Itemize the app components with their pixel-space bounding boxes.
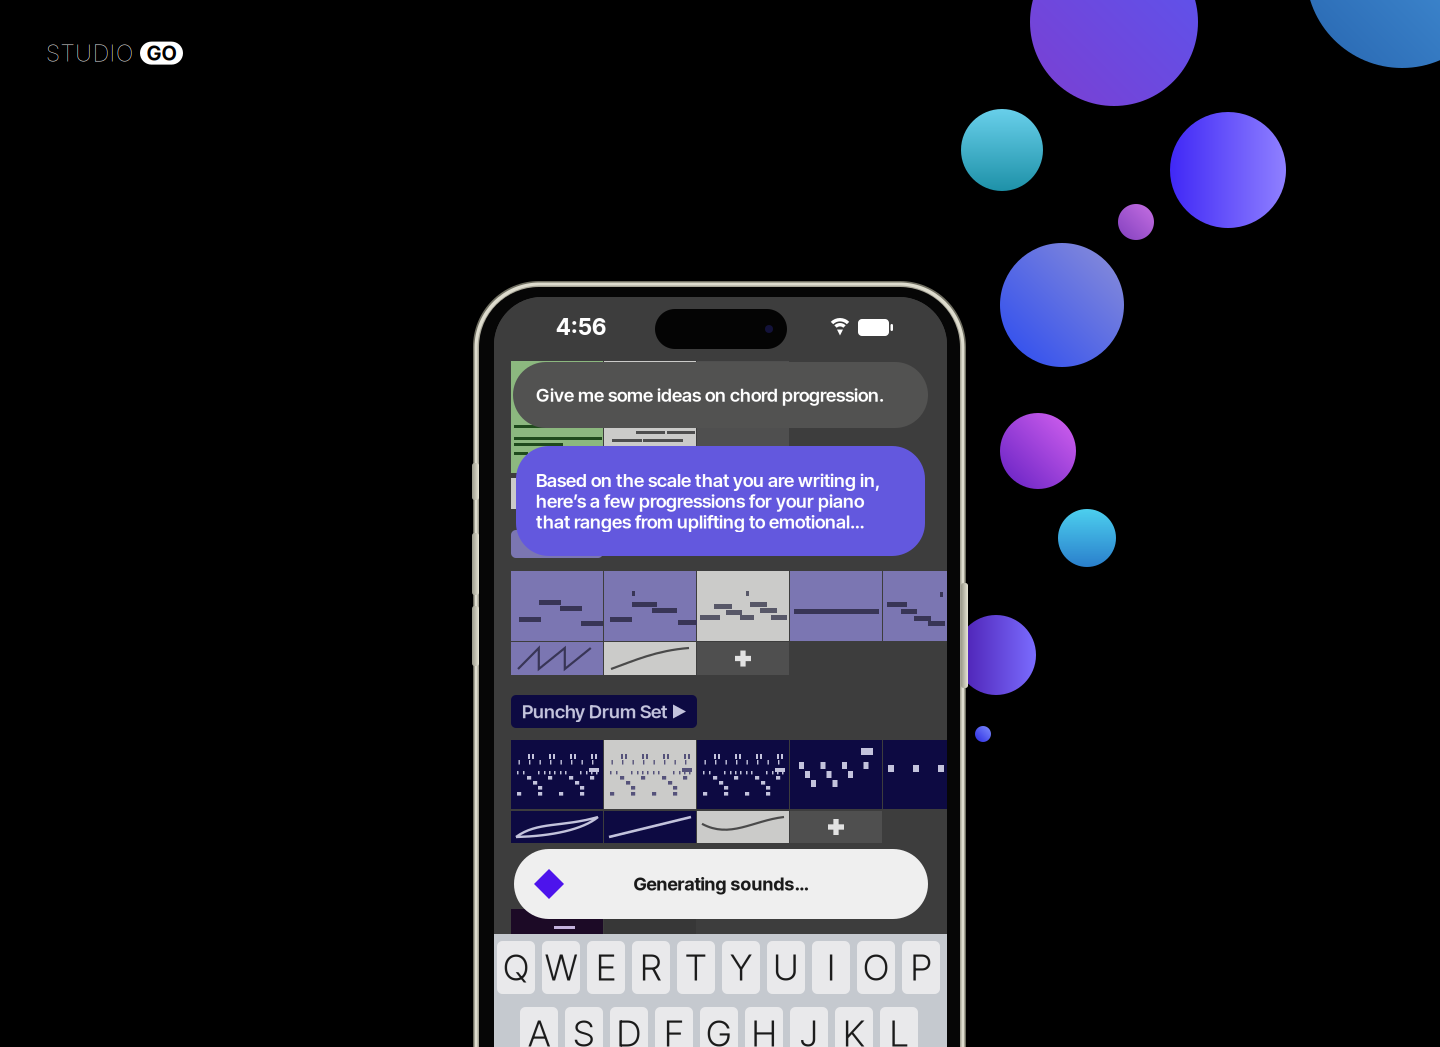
button[interactable]: Wi-Fi bbox=[494, 297, 520, 316]
button[interactable]: I bbox=[812, 941, 850, 994]
button[interactable]: D bbox=[610, 1007, 648, 1047]
button[interactable]: Add clip bbox=[697, 642, 789, 675]
button[interactable]: S bbox=[46, 39, 183, 67]
staticText: Q bbox=[503, 946, 529, 989]
staticText: K bbox=[843, 1012, 865, 1047]
button[interactable]: K bbox=[835, 1007, 873, 1047]
staticText: D bbox=[616, 1012, 641, 1047]
button[interactable]: W bbox=[542, 941, 580, 994]
staticText: Give me some ideas on chord progression. bbox=[536, 384, 884, 406]
button[interactable]: S bbox=[565, 1007, 603, 1047]
button[interactable]: Add clip bbox=[697, 361, 789, 473]
staticText: U bbox=[75, 39, 92, 67]
staticText: Punchy Drum Set bbox=[522, 700, 667, 723]
staticText: S bbox=[573, 1012, 595, 1047]
staticText: 4:56 bbox=[556, 313, 606, 340]
button[interactable]: Generating sounds… bbox=[514, 849, 928, 919]
staticText: G bbox=[706, 1012, 732, 1047]
staticText: I bbox=[827, 946, 835, 989]
button[interactable]: Add clip bbox=[790, 811, 882, 843]
staticText: I bbox=[109, 39, 115, 67]
staticText: Based on the scale that you are writing … bbox=[536, 469, 880, 491]
staticText: O bbox=[116, 39, 133, 67]
button[interactable]: Punchy Drum Set bbox=[511, 695, 697, 728]
staticText: T bbox=[685, 946, 707, 989]
staticText: Y bbox=[730, 946, 752, 989]
button[interactable]: R bbox=[632, 941, 670, 994]
staticText: GO bbox=[146, 41, 176, 65]
staticText: U bbox=[773, 946, 799, 989]
button[interactable]: G bbox=[700, 1007, 738, 1047]
button[interactable]: E bbox=[587, 941, 625, 994]
staticText: P bbox=[910, 946, 931, 989]
staticText: E bbox=[596, 946, 616, 989]
staticText: O bbox=[863, 946, 889, 989]
button[interactable]: O bbox=[857, 941, 895, 994]
staticText: A bbox=[528, 1012, 550, 1047]
staticText: that ranges from uplifting to emotional… bbox=[536, 511, 864, 533]
staticText: R bbox=[640, 946, 662, 989]
button[interactable]: T bbox=[677, 941, 715, 994]
button[interactable]: Battery bbox=[494, 297, 529, 314]
staticText: L bbox=[889, 1012, 908, 1047]
staticText: H bbox=[751, 1012, 776, 1047]
button[interactable]: Y bbox=[722, 941, 760, 994]
staticText: J bbox=[800, 1012, 818, 1047]
staticText: F bbox=[664, 1012, 684, 1047]
staticText: W bbox=[545, 946, 577, 989]
button[interactable]: A bbox=[520, 1007, 558, 1047]
button[interactable]: F bbox=[655, 1007, 693, 1047]
staticText: Generating sounds… bbox=[633, 873, 808, 895]
staticText: T bbox=[61, 39, 75, 67]
button[interactable]: J bbox=[790, 1007, 828, 1047]
staticText: D bbox=[93, 39, 109, 67]
button[interactable]: L bbox=[880, 1007, 918, 1047]
button[interactable]: Q bbox=[497, 941, 535, 994]
staticText: S bbox=[46, 39, 60, 67]
button[interactable]: P bbox=[902, 941, 940, 994]
button[interactable]: U bbox=[767, 941, 805, 994]
staticText: here’s a few progressions for your piano bbox=[536, 490, 864, 512]
button[interactable]: H bbox=[745, 1007, 783, 1047]
